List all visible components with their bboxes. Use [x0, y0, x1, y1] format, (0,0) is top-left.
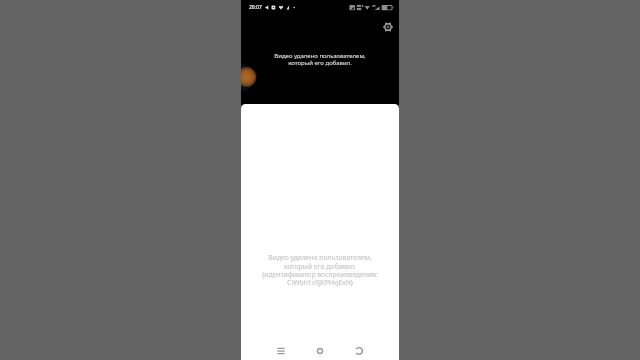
- button[interactable]: Settings: [380, 19, 396, 35]
- staticText: Видео удалено пользователем, который его…: [274, 52, 366, 67]
- staticText: 20:07: [249, 4, 262, 11]
- button[interactable]: Home: [310, 341, 330, 360]
- staticText: Видео удалено пользователем, который его…: [262, 253, 378, 287]
- button[interactable]: Back: [349, 341, 369, 360]
- button[interactable]: Recent apps: [271, 341, 291, 360]
